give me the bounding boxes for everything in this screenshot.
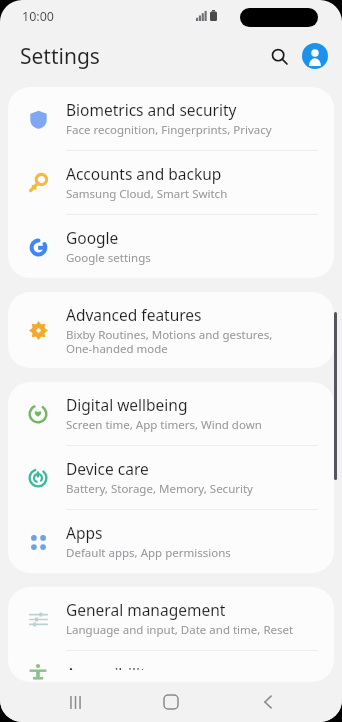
button[interactable]: Accounts and backup <box>8 151 334 214</box>
button[interactable]: Home <box>149 682 193 722</box>
staticText: Google settings <box>66 250 151 266</box>
button[interactable]: Accessibility <box>8 651 334 682</box>
staticText: Digital wellbeing <box>66 394 188 415</box>
button[interactable]: Back <box>246 682 290 722</box>
staticText: Battery, Storage, Memory, Security <box>66 481 253 497</box>
staticText: Device care <box>66 458 149 479</box>
staticText: Screen time, App timers, Wind down <box>66 417 262 433</box>
staticText: Google <box>66 227 119 248</box>
button[interactable]: General management <box>8 587 334 650</box>
staticText: Face recognition, Fingerprints, Privacy <box>66 122 272 138</box>
button[interactable]: Digital wellbeing <box>8 382 334 445</box>
staticText: General management <box>66 599 226 620</box>
button[interactable]: Recents <box>53 682 97 722</box>
button[interactable]: Apps <box>8 510 334 573</box>
button[interactable]: Advanced features <box>8 292 334 368</box>
button[interactable]: Search <box>262 39 296 73</box>
button[interactable]: Google <box>8 215 334 278</box>
staticText: Default apps, App permissions <box>66 545 231 561</box>
button[interactable]: Biometrics and security <box>8 87 334 150</box>
staticText: Bixby Routines, Motions and gestures, On… <box>66 327 273 356</box>
staticText: Apps <box>66 522 103 543</box>
staticText: 10:00 <box>22 8 54 25</box>
staticText: Language and input, Date and time, Reset <box>66 622 294 638</box>
staticText: Biometrics and security <box>66 99 237 120</box>
staticText: Samsung Cloud, Smart Switch <box>66 186 228 202</box>
button[interactable]: Account <box>302 43 328 69</box>
staticText: Settings <box>20 42 100 71</box>
staticText: Accounts and backup <box>66 163 222 184</box>
staticText: Advanced features <box>66 304 202 325</box>
button[interactable]: Device care <box>8 446 334 509</box>
staticText: Accessibility <box>66 663 154 670</box>
